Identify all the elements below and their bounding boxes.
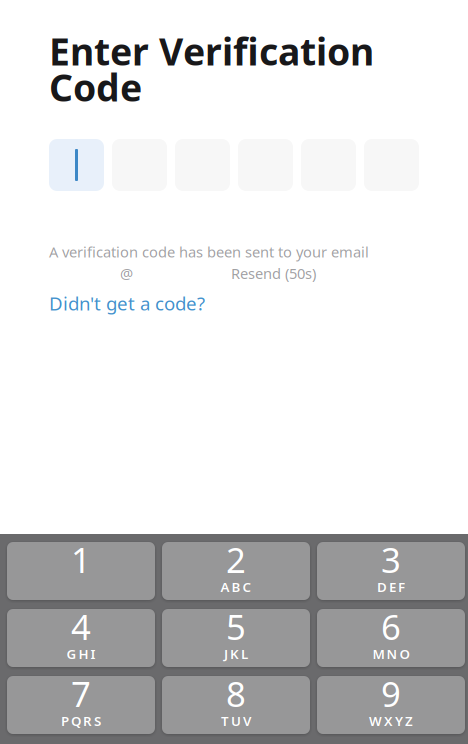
staticText: Code bbox=[49, 62, 142, 112]
staticText: Didn't get a code? bbox=[49, 291, 205, 316]
button[interactable]: 6 bbox=[317, 609, 465, 667]
staticText: ABC bbox=[220, 578, 251, 596]
staticText: GHI bbox=[66, 645, 95, 663]
button[interactable]: Resend (50s) bbox=[231, 263, 316, 283]
button[interactable]: Didn't get a code? bbox=[49, 291, 205, 316]
staticText: 5 bbox=[226, 603, 246, 649]
staticText: A verification code has been sent to you… bbox=[49, 242, 369, 261]
button[interactable]: 2 bbox=[162, 542, 310, 600]
staticText: Resend (50s) bbox=[231, 263, 316, 283]
staticText: 6 bbox=[381, 603, 401, 649]
staticText: Enter Verification bbox=[49, 26, 374, 76]
staticText: TUV bbox=[221, 712, 251, 730]
staticText: 7 bbox=[71, 670, 91, 716]
staticText: PQRS bbox=[61, 712, 101, 730]
button[interactable]: 8 bbox=[162, 676, 310, 734]
staticText: @ bbox=[120, 263, 133, 283]
button[interactable]: Verification code digit 1 bbox=[49, 139, 104, 191]
staticText: 4 bbox=[71, 603, 91, 649]
staticText: WXYZ bbox=[369, 712, 413, 730]
staticText: DEF bbox=[377, 578, 405, 596]
button[interactable]: 4 bbox=[7, 609, 155, 667]
button[interactable]: 9 bbox=[317, 676, 465, 734]
button[interactable]: 1 bbox=[7, 542, 155, 600]
staticText: 8 bbox=[226, 670, 246, 716]
staticText: 1 bbox=[71, 536, 91, 582]
staticText: 3 bbox=[381, 536, 401, 582]
staticText: MNO bbox=[372, 645, 409, 663]
button[interactable]: 3 bbox=[317, 542, 465, 600]
staticText: 9 bbox=[381, 670, 401, 716]
staticText: 2 bbox=[226, 536, 246, 582]
button[interactable]: 5 bbox=[162, 609, 310, 667]
staticText: JKL bbox=[224, 645, 248, 663]
button[interactable]: 7 bbox=[7, 676, 155, 734]
